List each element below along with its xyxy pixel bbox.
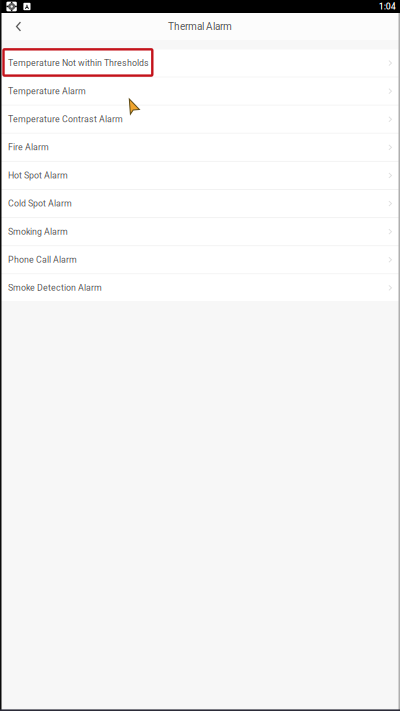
button[interactable]: Smoke Detection Alarm bbox=[0, 274, 400, 302]
staticText: 1:04 bbox=[379, 1, 396, 12]
staticText: Temperature Not within Thresholds bbox=[8, 58, 149, 68]
button[interactable]: Back bbox=[0, 13, 37, 40]
button[interactable]: Temperature Contrast Alarm bbox=[0, 106, 400, 134]
staticText: Temperature Alarm bbox=[8, 86, 86, 96]
button[interactable]: Temperature Alarm bbox=[0, 78, 400, 106]
button[interactable]: Cold Spot Alarm bbox=[0, 190, 400, 218]
staticText: Fire Alarm bbox=[8, 142, 49, 152]
staticText: Cold Spot Alarm bbox=[8, 198, 72, 209]
staticText: Temperature Contrast Alarm bbox=[8, 114, 123, 124]
staticText: Thermal Alarm bbox=[168, 21, 232, 32]
button[interactable]: Smoking Alarm bbox=[0, 218, 400, 246]
staticText: Smoking Alarm bbox=[8, 226, 68, 237]
button[interactable]: Fire Alarm bbox=[0, 134, 400, 162]
button[interactable]: Temperature Not within Thresholds bbox=[0, 49, 400, 78]
button[interactable]: Phone Call Alarm bbox=[0, 246, 400, 274]
staticText: Phone Call Alarm bbox=[8, 255, 77, 265]
staticText: Hot Spot Alarm bbox=[8, 170, 68, 181]
button[interactable]: Hot Spot Alarm bbox=[0, 162, 400, 190]
staticText: Smoke Detection Alarm bbox=[8, 283, 102, 293]
